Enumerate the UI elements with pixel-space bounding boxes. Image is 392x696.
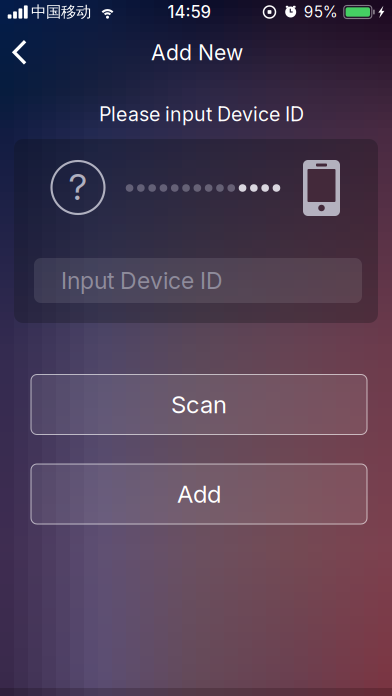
button[interactable]: Add [31, 464, 367, 524]
staticText: Input Device ID [61, 266, 223, 294]
staticText: Add [177, 479, 221, 508]
staticText: 95% [304, 3, 338, 21]
staticText: Add New [151, 40, 243, 65]
button[interactable]: Input Device ID [34, 258, 362, 303]
staticText: Please input Device ID [99, 102, 304, 126]
button[interactable]: Scan [31, 374, 367, 434]
staticText: ? [68, 165, 87, 209]
button[interactable]: Back [0, 30, 41, 74]
staticText: Scan [171, 390, 227, 419]
staticText: 14:59 [167, 2, 210, 22]
staticText: 中国移动 [31, 2, 91, 22]
